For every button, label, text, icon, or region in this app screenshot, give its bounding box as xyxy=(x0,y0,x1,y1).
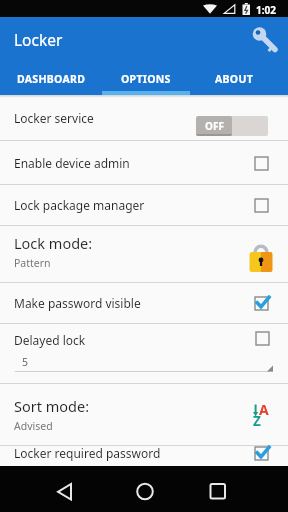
button[interactable] xyxy=(251,442,273,462)
staticText: OPTIONS xyxy=(121,72,171,86)
staticText: Delayed lock xyxy=(14,332,86,348)
staticText: Advised xyxy=(14,419,53,433)
button[interactable]: ABOUT xyxy=(190,62,278,95)
staticText: A xyxy=(259,400,269,419)
button[interactable] xyxy=(247,23,281,57)
button[interactable] xyxy=(0,466,288,512)
staticText: DASHBOARD xyxy=(17,72,86,86)
button[interactable] xyxy=(251,194,273,216)
button[interactable]: Enable device admin xyxy=(0,141,288,184)
staticText: Sort mode: xyxy=(14,396,90,416)
staticText: Locker xyxy=(14,29,63,50)
staticText: 1:02 xyxy=(256,3,276,17)
staticText: Locker required password xyxy=(14,445,161,461)
button[interactable] xyxy=(252,327,274,349)
button[interactable]: Locker required password xyxy=(0,446,288,466)
staticText: Lock package manager xyxy=(14,197,145,213)
staticText: OFF xyxy=(205,119,224,133)
button[interactable]: Delayed lock xyxy=(0,324,288,383)
button[interactable] xyxy=(251,152,273,174)
staticText: ABOUT xyxy=(215,72,254,86)
staticText: Make password visible xyxy=(14,295,141,311)
staticText: Locker service xyxy=(14,110,94,126)
button[interactable]: Locker service xyxy=(0,95,288,140)
staticText: Pattern xyxy=(14,256,51,270)
button[interactable]: Lock package manager xyxy=(0,185,288,225)
staticText: 5 xyxy=(22,355,29,369)
button[interactable]: DASHBOARD xyxy=(0,62,102,95)
button[interactable]: Sort mode: xyxy=(0,384,288,445)
button[interactable]: Lock mode: xyxy=(0,226,288,282)
staticText: Enable device admin xyxy=(14,155,130,171)
button[interactable]: OFF xyxy=(196,116,268,136)
button[interactable]: OPTIONS xyxy=(102,62,190,95)
staticText: Lock mode: xyxy=(14,233,93,253)
staticText: Z xyxy=(253,412,261,430)
button[interactable]: Make password visible xyxy=(0,283,288,323)
button[interactable] xyxy=(251,292,273,314)
